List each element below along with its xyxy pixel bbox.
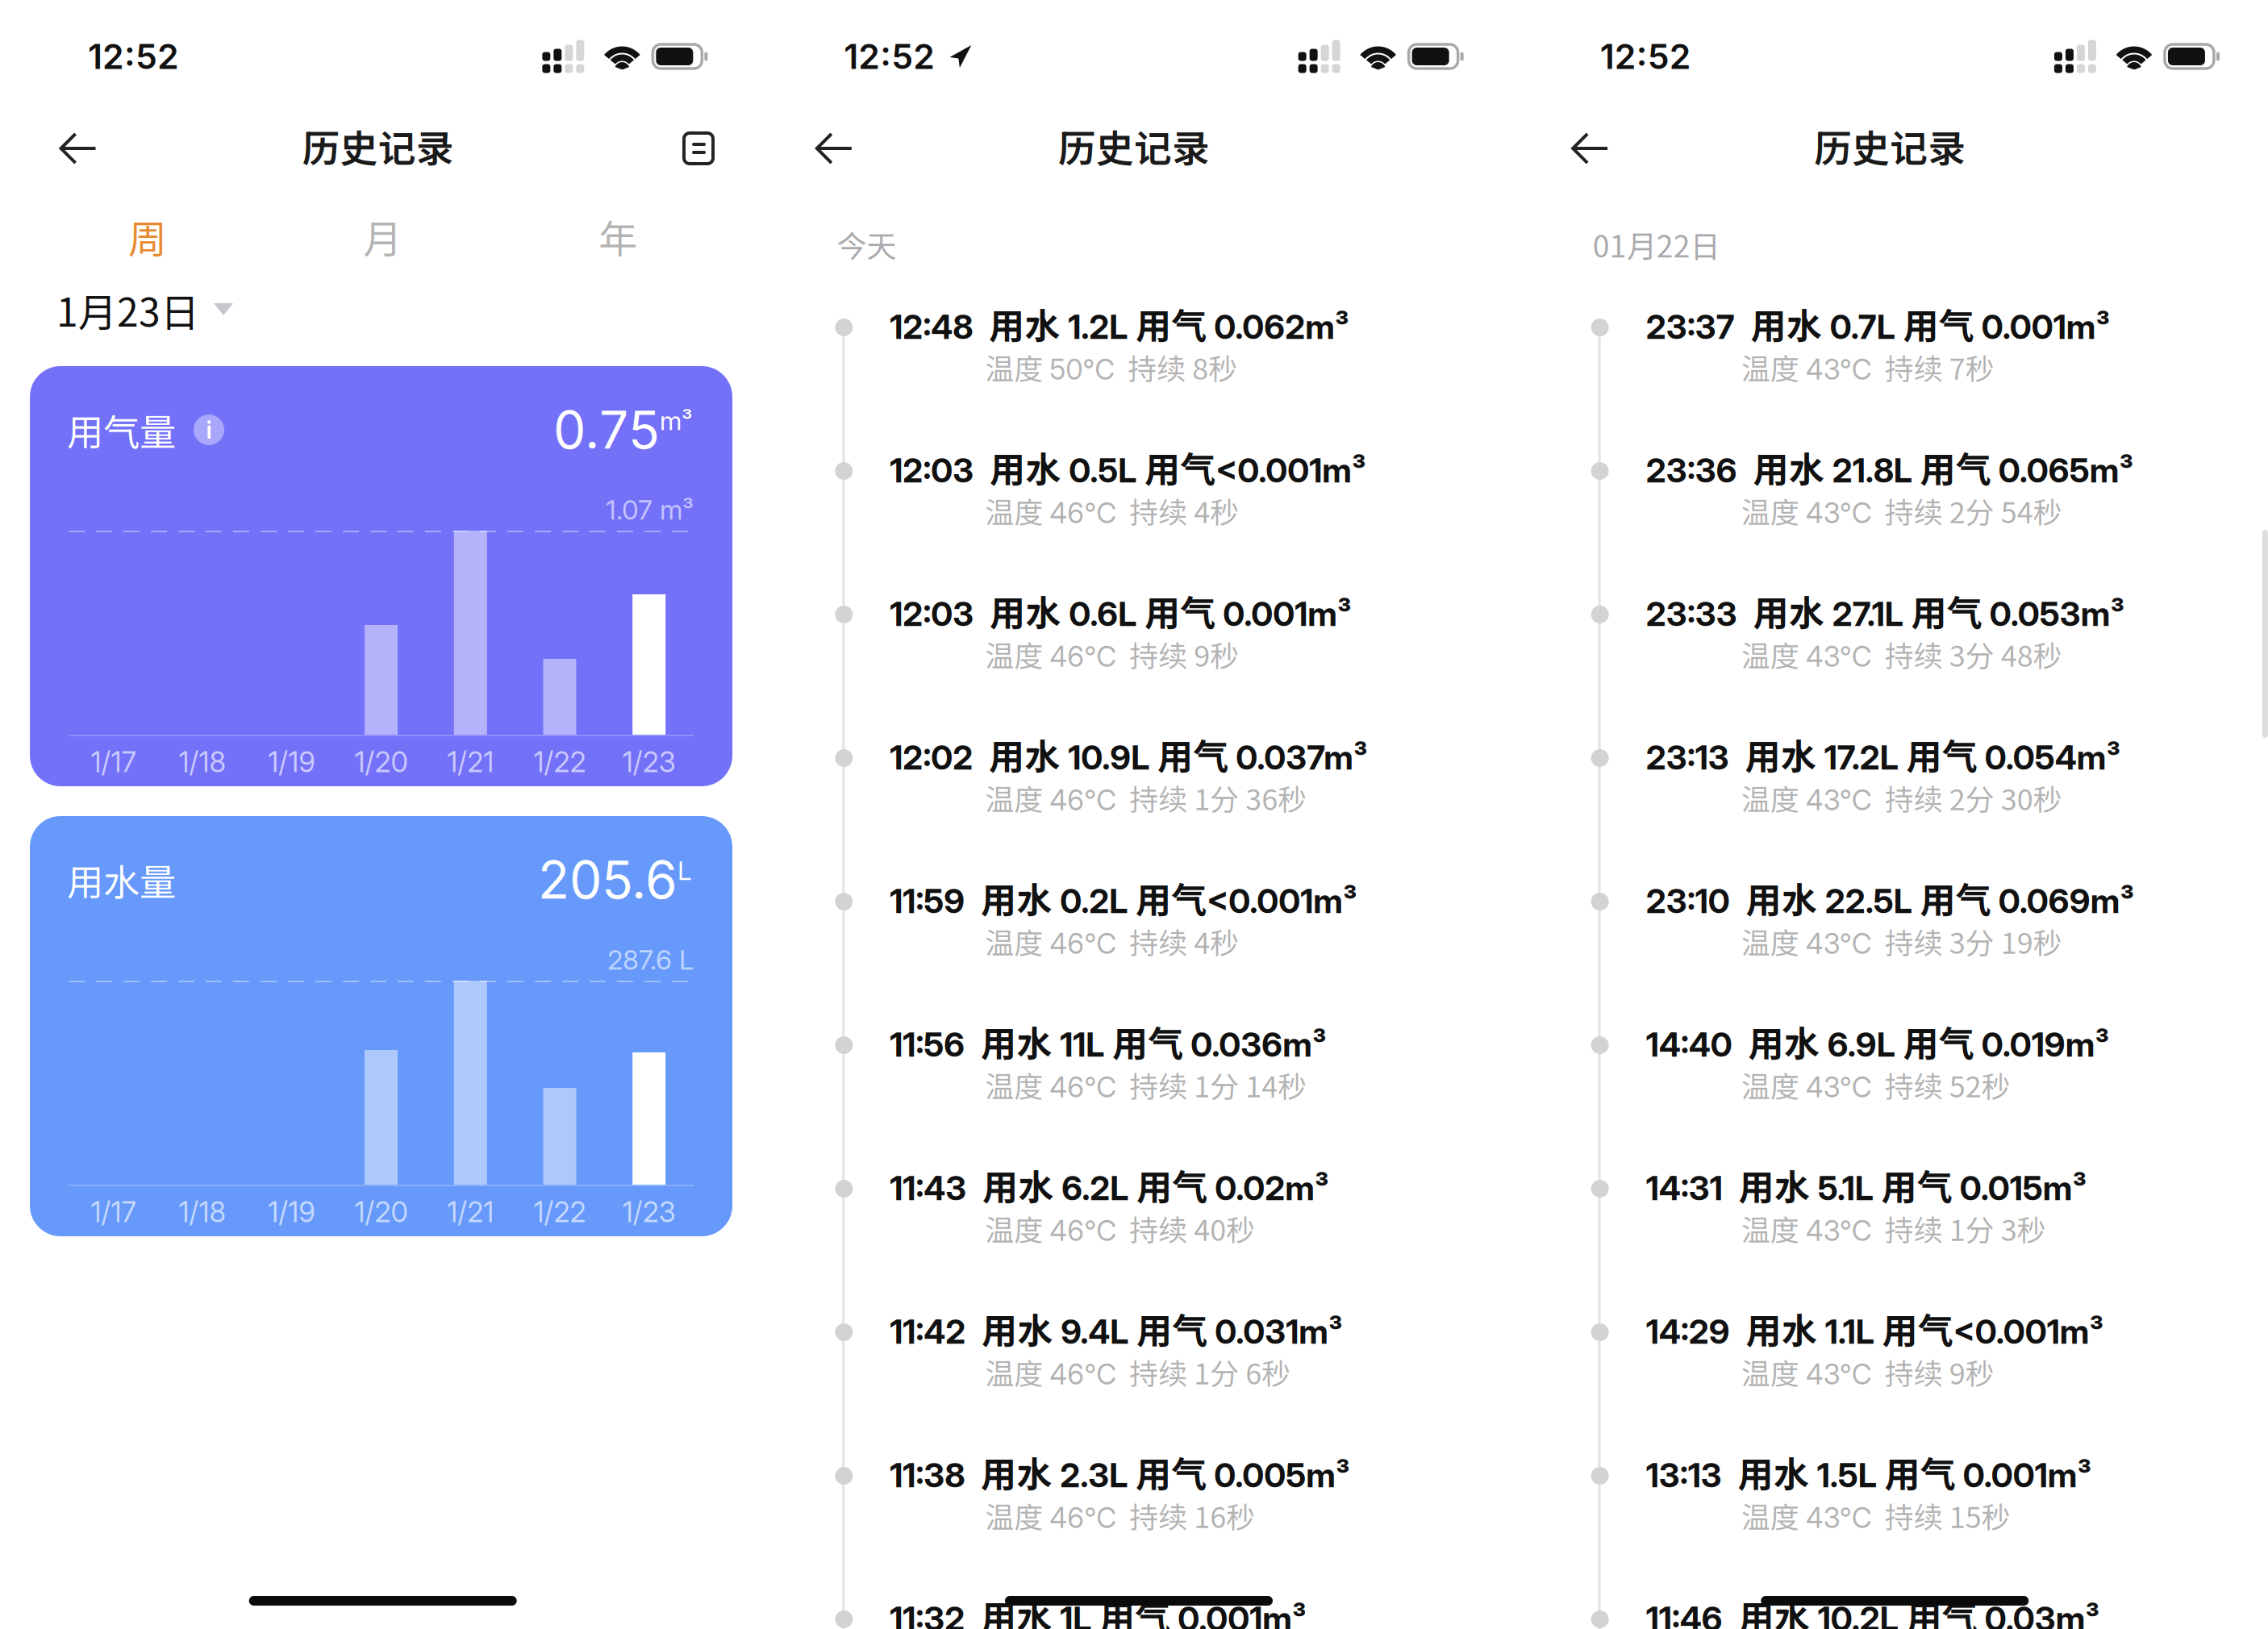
button[interactable]: 11:59 (816, 879, 1491, 1023)
staticText: 1/22 (534, 745, 586, 779)
staticText: 用气 (1129, 1302, 1208, 1354)
button[interactable]: 返回 (796, 110, 873, 187)
button[interactable]: 11:32 (816, 1597, 1491, 1629)
staticText: 21.8L (1832, 450, 1912, 490)
staticText: 用气 (1912, 872, 1991, 923)
staticText: 46°C (1050, 783, 1117, 817)
button[interactable]: 记录列表 (660, 110, 737, 187)
button[interactable]: 1月23日 (57, 283, 379, 336)
staticText: 43°C (1806, 1070, 1872, 1104)
staticText: 持续 (1117, 633, 1194, 675)
staticText: 持续 (1872, 346, 1949, 388)
staticText: 1/21 (447, 1195, 494, 1229)
staticText: 43°C (1806, 496, 1872, 530)
staticText: 0.037m³ (1229, 737, 1367, 777)
staticText: 3分 48秒 (1949, 633, 2062, 675)
staticText: 用水 (1722, 1446, 1817, 1497)
button[interactable]: 23:13 (1572, 735, 2247, 879)
staticText: 1L (1060, 1598, 1092, 1629)
button[interactable]: 23:10 (1572, 879, 2247, 1023)
staticText: 用水 (965, 1590, 1060, 1629)
button[interactable]: 14:31 (1572, 1166, 2247, 1310)
button[interactable]: 23:36 (1572, 448, 2247, 592)
staticText: 持续 (1117, 920, 1194, 962)
button[interactable]: 13:13 (1572, 1453, 2247, 1597)
button[interactable]: 11:43 (816, 1166, 1491, 1310)
staticText: 用水 (1737, 585, 1832, 636)
staticText: 23:36 (1646, 450, 1737, 490)
staticText: 用水 (965, 1015, 1060, 1067)
staticText: 0.02m³ (1208, 1168, 1329, 1208)
button[interactable]: 11:42 (816, 1310, 1491, 1453)
button[interactable]: 周 (30, 202, 265, 271)
staticText: L (678, 855, 692, 886)
staticText: 用气 (1898, 728, 1977, 780)
staticText: 持续 (1872, 489, 1949, 531)
staticText: 4秒 (1194, 489, 1239, 531)
staticText: 1/20 (355, 1195, 408, 1229)
staticText: 0.001m³ (1171, 1598, 1306, 1629)
button[interactable]: 12:03 (816, 592, 1491, 735)
staticText: 287.6 L (607, 943, 694, 976)
staticText: 0.2L (1060, 881, 1128, 921)
staticText: 12:52 (1600, 36, 1691, 77)
staticText: 11:38 (890, 1455, 965, 1495)
button[interactable]: 年 (500, 202, 735, 271)
staticText: 12:02 (890, 737, 973, 777)
staticText: 11:59 (890, 881, 965, 921)
staticText: 用气 (1877, 1446, 1956, 1497)
button[interactable]: 23:33 (1572, 592, 2247, 735)
staticText: 46°C (1050, 1357, 1117, 1391)
staticText: 温度 (985, 777, 1050, 819)
staticText: 持续 (1117, 1064, 1194, 1106)
staticText: 11L (1060, 1024, 1104, 1065)
staticText: 持续 (1872, 920, 1949, 962)
staticText: 用水 (1737, 441, 1832, 493)
staticText: 43°C (1806, 783, 1872, 817)
button[interactable]: 月 (265, 202, 500, 271)
button[interactable]: 用气量 (30, 366, 732, 786)
staticText: 0.053m³ (1982, 594, 2124, 634)
staticText: 12:52 (844, 36, 935, 77)
button[interactable]: 11:46 (1572, 1597, 2247, 1629)
button[interactable]: 12:03 (816, 448, 1491, 592)
button[interactable]: 返回 (40, 110, 117, 187)
staticText: 16秒 (1194, 1494, 1255, 1536)
staticText: 持续 (1117, 489, 1194, 531)
staticText: 2分 54秒 (1949, 489, 2062, 531)
staticText: 用气 (1903, 585, 1982, 636)
staticText: 3分 19秒 (1949, 920, 2062, 962)
staticText: 0.065m³ (1991, 450, 2133, 490)
staticText: 持续 (1872, 1064, 1949, 1106)
button[interactable]: 12:48 (816, 305, 1491, 448)
staticText: 持续 (1872, 1207, 1949, 1249)
staticText: 8秒 (1192, 346, 1238, 388)
staticText: 用气 (1129, 1159, 1208, 1210)
button[interactable]: 用水量 (30, 816, 732, 1236)
staticText: 温度 (1741, 633, 1806, 675)
staticText: 温度 (1741, 920, 1806, 962)
button[interactable]: 14:29 (1572, 1310, 2247, 1453)
staticText: 今天 (837, 223, 896, 266)
staticText: 持续 (1117, 1351, 1194, 1393)
staticText: 用气 (1128, 872, 1207, 923)
staticText: 50°C (1050, 352, 1115, 386)
staticText: 2分 30秒 (1949, 777, 2062, 819)
button[interactable]: 返回 (1552, 110, 1629, 187)
button[interactable]: 12:02 (816, 735, 1491, 879)
staticText: 5.1L (1818, 1168, 1873, 1208)
staticText: 温度 (1741, 1351, 1806, 1393)
button[interactable]: 11:56 (816, 1023, 1491, 1166)
staticText: 温度 (1741, 346, 1806, 388)
staticText: 4秒 (1194, 920, 1239, 962)
staticText: 用水 (1723, 1159, 1818, 1210)
button[interactable]: 23:37 (1572, 305, 2247, 448)
staticText: 温度 (1741, 1494, 1806, 1536)
staticText: <0.001m³ (1953, 1311, 2103, 1352)
staticText: 0.054m³ (1977, 737, 2120, 777)
staticText: 1/23 (622, 1195, 676, 1229)
button[interactable]: 14:40 (1572, 1023, 2247, 1166)
staticText: 持续 (1117, 777, 1194, 819)
staticText: 用水 (1735, 298, 1830, 349)
button[interactable]: 11:38 (816, 1453, 1491, 1597)
